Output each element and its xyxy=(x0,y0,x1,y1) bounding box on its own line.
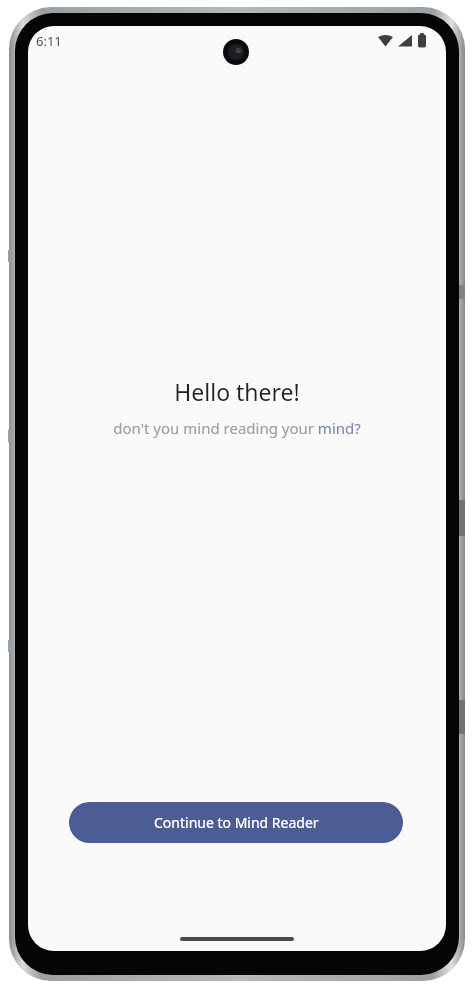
staticText: Continue to Mind Reader xyxy=(154,813,319,832)
staticText: 6:11 xyxy=(36,32,62,50)
button[interactable]: Continue to Mind Reader xyxy=(69,802,403,843)
staticText: don't you mind reading your mind? xyxy=(113,418,361,438)
staticText: Hello there! xyxy=(174,376,300,407)
